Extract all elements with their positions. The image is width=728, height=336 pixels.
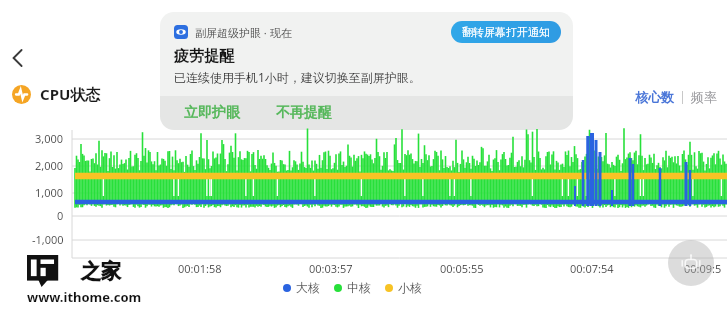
staticText: 之家 [81, 259, 121, 284]
staticText: 频率 [691, 89, 717, 105]
button[interactable]: 大核 [283, 280, 320, 295]
staticText: 00:09:5 [684, 261, 722, 276]
staticText: 核心数 [635, 89, 674, 105]
staticText: 0 [57, 208, 64, 223]
staticText: 00:03:57 [309, 261, 353, 276]
button[interactable]: CPU状态 [12, 84, 101, 104]
staticText: 翻转屏幕打开通知 [462, 25, 550, 39]
button[interactable]: 翻转屏幕打开通知 [451, 21, 561, 43]
staticText: 疲劳提醒 [174, 47, 234, 66]
button[interactable]: 核心数 [632, 85, 677, 109]
staticText: 00:07:54 [570, 261, 614, 276]
button[interactable]: Back [0, 40, 36, 76]
button[interactable]: 立即护眼 [180, 98, 244, 128]
staticText: -1,000 [32, 232, 64, 247]
staticText: 已连续使用手机1小时，建议切换至副屏护眼。 [174, 69, 421, 85]
staticText: 不再提醒 [276, 104, 332, 122]
staticText: 副屏超级护眼 · 现在 [195, 25, 292, 40]
button[interactable]: 中核 [334, 280, 371, 295]
staticText: 大核 [296, 280, 320, 295]
button[interactable]: 副屏超级护眼 · 现在 [160, 12, 573, 130]
staticText: 立即护眼 [184, 104, 240, 122]
staticText: 2,000 [35, 158, 64, 173]
staticText: 中核 [347, 280, 371, 295]
button[interactable]: Assistant [668, 240, 714, 286]
button[interactable]: 小核 [385, 280, 422, 295]
button[interactable]: 频率 [688, 85, 720, 109]
button[interactable]: 不再提醒 [272, 98, 336, 128]
staticText: CPU状态 [40, 84, 101, 104]
staticText: 1,000 [35, 185, 64, 200]
staticText: 00:01:58 [178, 261, 222, 276]
staticText: www.ithome.com [27, 288, 142, 306]
staticText: 小核 [398, 280, 422, 295]
staticText: 00:05:55 [440, 261, 484, 276]
staticText: 3,000 [35, 131, 64, 146]
